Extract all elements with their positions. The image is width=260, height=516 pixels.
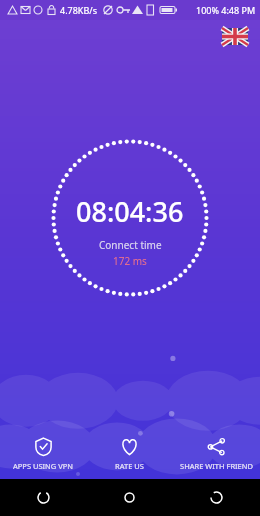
- button[interactable]: Back: [0, 479, 86, 516]
- button[interactable]: Apps using VPN: [0, 429, 86, 479]
- staticText: 08:04:36: [76, 193, 184, 230]
- button[interactable]: Select country: [222, 28, 248, 45]
- staticText: RATE US: [115, 461, 144, 471]
- button[interactable]: Share with friend: [173, 429, 260, 479]
- other: Rate us: [120, 437, 139, 456]
- staticText: 172 ms: [113, 254, 147, 268]
- button[interactable]: Home: [86, 479, 173, 516]
- other: Apps using VPN: [34, 437, 53, 456]
- staticText: Connect time: [99, 238, 162, 252]
- other: Share with friend: [207, 437, 226, 456]
- button[interactable]: Recents: [173, 479, 260, 516]
- button[interactable]: 08:04:36: [51, 139, 209, 297]
- staticText: APPS USING VPN: [13, 461, 73, 471]
- staticText: 100% 4:48 PM: [196, 4, 256, 16]
- staticText: SHARE WITH FRIEND: [180, 461, 253, 471]
- staticText: 4.78KB/s: [60, 4, 97, 16]
- button[interactable]: Rate us: [86, 429, 173, 479]
